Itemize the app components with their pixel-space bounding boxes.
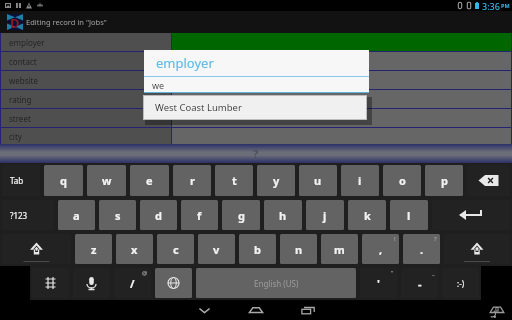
button[interactable]: u bbox=[299, 165, 337, 196]
button[interactable]: Backspace bbox=[467, 165, 510, 196]
button[interactable]: Home bbox=[230, 300, 282, 320]
staticText: o bbox=[399, 173, 406, 188]
button[interactable]: o bbox=[383, 165, 421, 196]
staticText: employer bbox=[156, 54, 214, 72]
button[interactable]: street bbox=[0, 109, 512, 127]
staticText: street bbox=[9, 113, 31, 124]
button[interactable]: employer bbox=[0, 33, 512, 51]
staticText: z bbox=[91, 242, 97, 257]
staticText: s bbox=[115, 208, 121, 223]
button[interactable]: Shift bbox=[2, 234, 71, 264]
button[interactable]: b bbox=[239, 234, 276, 264]
button[interactable]: s bbox=[99, 200, 136, 230]
staticText: g bbox=[238, 208, 245, 223]
button[interactable]: Hide keyboard bbox=[178, 300, 230, 320]
button[interactable]: Tab bbox=[2, 165, 40, 196]
staticText: contact bbox=[9, 56, 37, 67]
button[interactable]: . bbox=[403, 234, 440, 264]
button[interactable]: g bbox=[222, 200, 260, 230]
staticText: @ bbox=[142, 269, 148, 277]
button[interactable]: contact bbox=[0, 52, 512, 70]
button[interactable]: d bbox=[140, 200, 177, 230]
staticText: employer bbox=[9, 37, 45, 48]
staticText: West Coast Lumber bbox=[155, 101, 242, 114]
staticText: we bbox=[152, 79, 165, 91]
button[interactable]: h bbox=[264, 200, 302, 230]
button[interactable]: rating bbox=[0, 90, 512, 108]
staticText: c bbox=[173, 242, 179, 257]
button[interactable]: j bbox=[306, 200, 344, 230]
button[interactable]: website bbox=[0, 71, 512, 89]
button[interactable]: - bbox=[401, 268, 438, 298]
button[interactable]: x bbox=[116, 234, 153, 264]
staticText: e bbox=[146, 173, 153, 188]
button[interactable]: q bbox=[44, 165, 83, 196]
staticText: Editing record in "Jobs" bbox=[26, 17, 107, 27]
staticText: m bbox=[334, 242, 345, 257]
button[interactable]: Enter bbox=[432, 200, 510, 230]
staticText: f bbox=[197, 208, 202, 223]
button[interactable]: ' bbox=[360, 268, 397, 298]
button[interactable]: k bbox=[348, 200, 386, 230]
button[interactable]: n bbox=[280, 234, 317, 264]
button[interactable]: :-) bbox=[442, 268, 479, 298]
button[interactable]: p bbox=[425, 165, 463, 196]
staticText: ? bbox=[253, 146, 259, 161]
button[interactable]: ?123 bbox=[2, 200, 54, 230]
staticText: a bbox=[73, 208, 80, 223]
button[interactable]: English (US) bbox=[196, 268, 356, 298]
staticText: , bbox=[379, 242, 383, 257]
staticText: rating bbox=[9, 94, 32, 105]
button[interactable]: f bbox=[181, 200, 218, 230]
button[interactable]: i bbox=[341, 165, 379, 196]
button[interactable]: Keyboard settings bbox=[32, 268, 69, 298]
staticText: w bbox=[102, 173, 112, 188]
button[interactable]: App icon bbox=[7, 14, 23, 30]
staticText: ?123 bbox=[10, 210, 28, 221]
button[interactable]: e bbox=[130, 165, 169, 196]
button[interactable]: c bbox=[157, 234, 194, 264]
button[interactable]: Keyboard indicator bbox=[488, 301, 506, 319]
staticText: city bbox=[9, 131, 22, 142]
staticText: l bbox=[407, 208, 411, 223]
staticText: k bbox=[364, 208, 371, 223]
staticText: v bbox=[213, 242, 220, 257]
staticText: u bbox=[314, 173, 322, 188]
staticText: ? bbox=[434, 235, 437, 243]
staticText: - bbox=[418, 276, 422, 291]
staticText: ! bbox=[394, 235, 396, 243]
staticText: r bbox=[190, 173, 195, 188]
button[interactable]: y bbox=[257, 165, 295, 196]
staticText: t bbox=[232, 173, 237, 188]
staticText: :-) bbox=[457, 278, 465, 289]
staticText: i bbox=[358, 173, 362, 188]
staticText: p bbox=[441, 173, 448, 188]
staticText: j bbox=[323, 208, 327, 223]
staticText: PM bbox=[501, 2, 510, 9]
button[interactable]: Language bbox=[155, 268, 192, 298]
button[interactable]: / bbox=[114, 268, 151, 298]
staticText: h bbox=[279, 208, 287, 223]
button[interactable]: West Coast Lumber bbox=[144, 96, 366, 119]
button[interactable]: a bbox=[58, 200, 95, 230]
button[interactable]: , bbox=[362, 234, 399, 264]
button[interactable]: r bbox=[173, 165, 211, 196]
staticText: q bbox=[60, 173, 67, 188]
button[interactable]: v bbox=[198, 234, 235, 264]
staticText: y bbox=[273, 173, 280, 188]
button[interactable]: Voice input bbox=[73, 268, 110, 298]
staticText: d bbox=[155, 208, 162, 223]
button[interactable]: city bbox=[0, 128, 512, 144]
button[interactable]: w bbox=[87, 165, 126, 196]
staticText: Tab bbox=[10, 175, 24, 186]
staticText: ' bbox=[377, 276, 380, 291]
button[interactable]: Shift bbox=[444, 234, 510, 264]
button[interactable]: m bbox=[321, 234, 358, 264]
button[interactable]: z bbox=[75, 234, 112, 264]
button[interactable]: t bbox=[215, 165, 253, 196]
staticText: _ bbox=[432, 269, 435, 277]
button[interactable]: l bbox=[390, 200, 428, 230]
staticText: b bbox=[254, 242, 261, 257]
staticText: " bbox=[391, 269, 394, 277]
button[interactable]: Recent apps bbox=[282, 300, 334, 320]
